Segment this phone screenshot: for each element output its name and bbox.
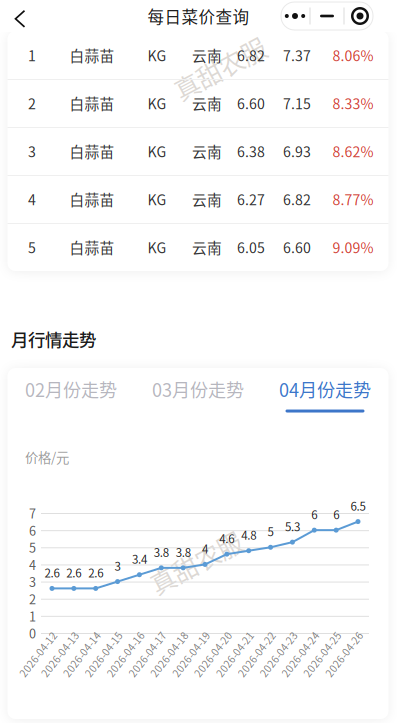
staticText: 6.27 [237,189,265,209]
staticText: 6.93 [283,141,311,161]
staticText: 价格/元 [25,447,69,467]
staticText: 6.38 [237,141,265,161]
staticText: 6.5 [350,497,365,514]
staticText: 云南 [192,236,222,258]
staticText: 6.82 [283,189,311,209]
staticText: KG [147,237,166,257]
button[interactable]: 04月份走势 [261,368,388,418]
staticText: 5 [29,538,36,556]
staticText: 6.60 [283,237,311,257]
button[interactable]: 小程序菜单 [281,2,373,30]
staticText: 3 [115,557,121,574]
staticText: 白蒜苗 [69,92,114,114]
staticText: 云南 [192,188,222,210]
staticText: 4 [29,555,36,574]
staticText: 2026-04-16 [102,655,156,669]
staticText: 2026-04-14 [59,655,113,669]
staticText: 3.4 [132,550,147,567]
button[interactable]: 2 [7,79,388,127]
button[interactable]: 返回 [3,6,37,32]
staticText: 3 [28,141,36,161]
staticText: 3.8 [154,543,169,560]
button[interactable]: 02月份走势 [7,368,134,418]
staticText: 0 [29,624,36,642]
staticText: 8.62% [332,141,373,161]
staticText: 2026-04-12 [15,655,69,669]
button[interactable]: 5 [7,223,388,271]
button[interactable]: 1 [7,31,388,79]
staticText: 7.37 [283,45,311,65]
staticText: 2026-04-19 [168,655,222,669]
staticText: 云南 [192,44,222,66]
staticText: 2026-04-18 [146,655,200,669]
staticText: KG [147,45,166,65]
staticText: 云南 [192,92,222,114]
staticText: 6.60 [237,93,265,113]
staticText: 2026-04-21 [212,655,266,669]
staticText: 3 [29,572,36,591]
staticText: 03月份走势 [152,376,244,402]
staticText: KG [147,189,166,209]
staticText: 2026-04-24 [277,655,331,669]
staticText: 月行情走势 [11,326,96,352]
staticText: 4 [202,540,208,557]
staticText: 2026-04-23 [255,655,309,669]
button[interactable]: 3 [7,127,388,175]
staticText: 5 [268,523,274,540]
staticText: 2026-04-20 [190,655,244,669]
staticText: 8.06% [332,45,373,65]
staticText: 8.33% [332,93,373,113]
staticText: 6 [29,521,36,539]
staticText: 每日菜价查询 [147,4,249,28]
staticText: 5.3 [285,518,300,534]
staticText: 4.8 [241,526,256,543]
staticText: 2026-04-13 [37,655,91,669]
staticText: 2026-04-26 [321,655,375,669]
staticText: 6.82 [237,45,265,65]
staticText: 2.6 [88,564,103,581]
staticText: 6 [311,506,317,522]
staticText: 白蒜苗 [69,44,114,66]
staticText: 6.05 [237,237,265,257]
button[interactable]: 4 [7,175,388,223]
staticText: 7 [29,504,36,522]
staticText: 真甜农服 [168,43,268,79]
staticText: 6 [333,506,339,522]
staticText: 3.8 [176,543,191,560]
staticText: 白蒜苗 [69,140,114,162]
staticText: 1 [29,607,36,625]
button[interactable]: 03月份走势 [134,368,261,418]
staticText: 8.77% [332,189,373,209]
staticText: 7.15 [283,93,311,113]
staticText: 2026-04-17 [124,655,178,669]
staticText: 02月份走势 [25,376,117,402]
staticText: KG [147,141,166,161]
staticText: 白蒜苗 [69,188,114,210]
staticText: 2026-04-25 [299,655,353,669]
staticText: 白蒜苗 [69,236,114,258]
staticText: 2.6 [44,564,59,581]
staticText: 真甜农服 [144,537,244,573]
staticText: KG [147,93,166,113]
staticText: 4 [28,189,36,209]
staticText: 2 [28,93,36,113]
staticText: 2026-04-15 [81,655,135,669]
staticText: 5 [28,237,36,257]
staticText: 2 [29,589,36,608]
staticText: 云南 [192,140,222,162]
staticText: 2.6 [66,564,81,581]
staticText: 4.6 [219,530,234,546]
staticText: 9.09% [332,237,373,257]
staticText: 1 [28,45,36,65]
staticText: 2026-04-22 [234,655,288,669]
staticText: 04月份走势 [279,376,371,402]
